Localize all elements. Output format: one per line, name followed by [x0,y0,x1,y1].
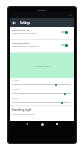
button[interactable]: Recents [54,121,60,127]
staticText: Enable breathing light [12,113,34,116]
staticText: 239 [15,88,19,91]
button[interactable]: Home [39,121,45,127]
staticText: 255 [15,79,19,82]
staticText: 216 [15,97,19,100]
staticText: Apply maximum brightness [12,45,40,48]
button[interactable]: Back [10,19,18,27]
staticText: B [12,97,14,100]
staticText: Keep Screen On [12,28,31,31]
staticText: R [12,79,14,82]
button[interactable]: R [10,78,74,87]
button[interactable]: Max Brightness [10,40,74,52]
button[interactable]: Back [24,121,30,127]
button[interactable]: Keep Screen On [10,27,74,39]
button[interactable]: Toggle Max Brightness [60,42,71,48]
staticText: Screen will never turn off [12,32,37,35]
staticText: Breathing Light [12,108,32,112]
button[interactable]: Toggle Keep Screen On [60,29,71,35]
button[interactable]: Breathing Light [10,106,74,116]
staticText: Max Brightness [12,41,30,44]
button[interactable]: B [10,96,74,105]
staticText: G [12,88,14,91]
staticText: Choose a color [34,64,51,67]
button[interactable]: G [10,87,74,96]
button[interactable]: Choose a color [10,53,74,78]
staticText: Settings [20,21,31,25]
